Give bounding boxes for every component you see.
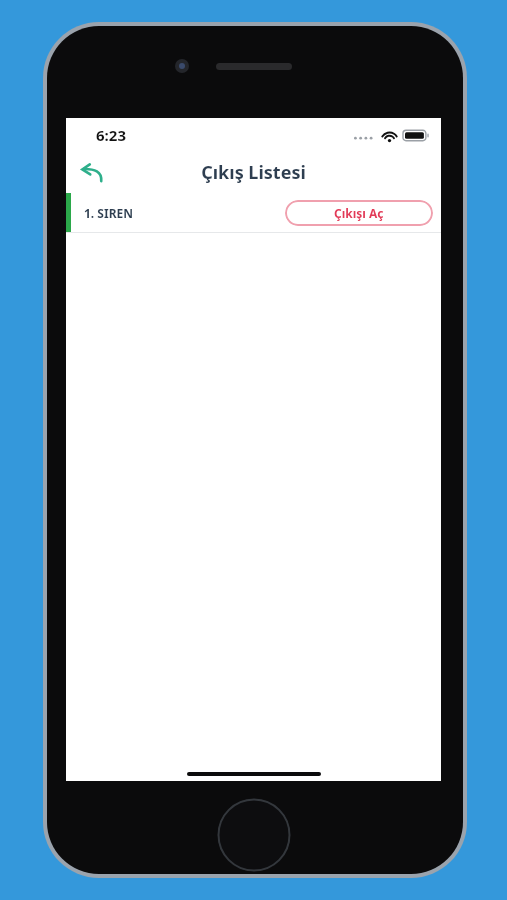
staticText: Çıkış Listesi (201, 160, 306, 185)
button[interactable]: Çıkışı Aç (285, 200, 433, 226)
staticText: Çıkışı Aç (334, 205, 384, 221)
button[interactable]: 1. SIREN (66, 193, 441, 232)
staticText: 1. SIREN (84, 205, 133, 221)
staticText: 6:23 (96, 125, 126, 145)
button[interactable]: Back (72, 153, 112, 193)
